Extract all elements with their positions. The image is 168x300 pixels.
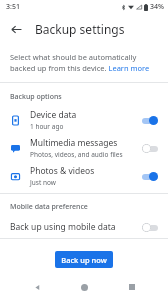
staticText: Backup options [10, 92, 62, 102]
staticText: Device data [30, 109, 77, 121]
staticText: Photos & videos [30, 165, 95, 177]
button[interactable]: Toggle off [140, 221, 160, 234]
button[interactable]: Toggle on [140, 170, 160, 183]
button[interactable]: Home [73, 276, 95, 298]
button[interactable]: Photos & videos [0, 162, 168, 190]
staticText: Mobile data preference [10, 202, 88, 212]
staticText: Just now [30, 178, 56, 187]
staticText: Back up now [61, 255, 107, 265]
staticText: Backup settings [35, 21, 125, 37]
staticText: 3:51 [6, 2, 20, 12]
button[interactable]: Back [6, 19, 26, 39]
button[interactable]: Toggle off [140, 142, 160, 155]
button[interactable]: Toggle on [140, 114, 160, 127]
button[interactable]: Recents [121, 276, 143, 298]
staticText: Select what should be automatically back… [10, 52, 158, 73]
button[interactable]: Back up now [55, 251, 113, 268]
staticText: 1 hour ago [30, 122, 64, 131]
button[interactable]: Device data [0, 106, 168, 134]
button[interactable]: Back [26, 276, 48, 298]
button[interactable]: Multimedia messages [0, 134, 168, 162]
button[interactable]: Back up using mobile data [0, 216, 168, 238]
staticText: Photos, videos, and audio files [30, 150, 123, 159]
staticText: Multimedia messages [30, 137, 118, 149]
staticText: 34% [150, 2, 164, 12]
staticText: Back up using mobile data [10, 221, 140, 233]
